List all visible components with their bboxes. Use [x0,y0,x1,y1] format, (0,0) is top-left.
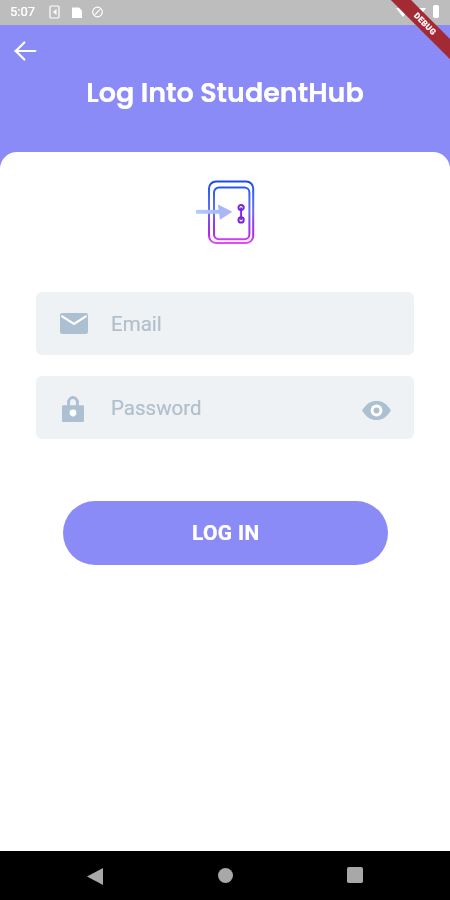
staticText: Email [111,312,162,336]
button[interactable]: Back [1,27,49,75]
button[interactable]: Recent apps [331,851,379,899]
staticText: 5:07 [10,4,36,19]
button[interactable]: Home [201,851,249,899]
button[interactable]: Show password [356,390,396,430]
staticText: Log Into StudentHub [86,74,364,112]
button[interactable]: Back [71,852,119,900]
staticText: Password [111,396,202,420]
button[interactable]: Email [36,292,414,355]
button[interactable]: Password [36,376,414,439]
staticText: LOG IN [192,521,260,546]
button[interactable]: LOG IN [63,501,388,565]
